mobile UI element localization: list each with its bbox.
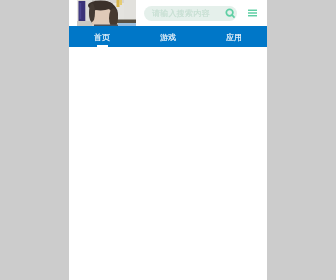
button[interactable]: Menu [248, 9, 257, 17]
button[interactable]: 首页 [69, 26, 135, 47]
staticText: 请输入搜索内容 [152, 8, 210, 18]
button[interactable]: 游戏 [135, 26, 201, 47]
button[interactable]: 应用 [201, 26, 267, 47]
staticText: 首页 [94, 32, 110, 42]
button[interactable]: Search [225, 8, 235, 18]
button[interactable]: 请输入搜索内容 [144, 6, 237, 21]
staticText: 游戏 [160, 32, 176, 42]
staticText: 应用 [226, 32, 242, 42]
